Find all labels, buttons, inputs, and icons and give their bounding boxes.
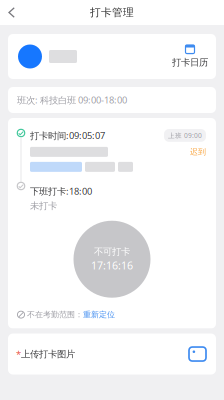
staticText: 重新定位 [83, 310, 115, 319]
staticText: 上班 09:00 [168, 131, 202, 140]
staticText: 打卡日历 [172, 57, 208, 68]
button[interactable]: 上传打卡图片 [189, 347, 206, 361]
staticText: * [16, 348, 21, 360]
button[interactable]: 打卡日历 [172, 45, 208, 68]
staticText: 迟到 [190, 147, 206, 157]
button[interactable]: 不可打卡 [73, 221, 150, 298]
staticText: 打卡时间:09:05:07 [30, 129, 105, 142]
staticText: 未打卡 [30, 200, 57, 212]
staticText: 17:16:16 [91, 258, 133, 273]
staticText: 下班打卡:18:00 [30, 185, 92, 197]
staticText: 班次: 科技白班 09:00-18:00 [17, 94, 127, 106]
button[interactable]: 返回 [0, 1, 22, 24]
staticText: 不可打卡 [94, 246, 130, 257]
staticText: 上传打卡图片 [21, 348, 75, 360]
staticText: 不在考勤范围： [27, 310, 83, 319]
button[interactable]: 重新定位 [83, 310, 115, 319]
staticText: 打卡管理 [90, 6, 134, 19]
